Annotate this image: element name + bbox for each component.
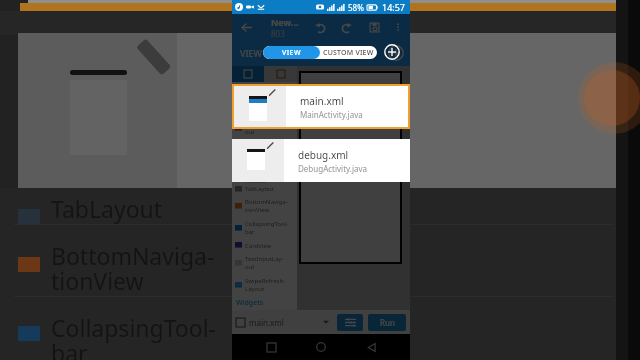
button[interactable]: CardView [232, 239, 297, 252]
staticText: RelativeLay- out [245, 120, 279, 136]
button[interactable]: CUSTOM VIEW [320, 46, 377, 59]
button[interactable]: Run [368, 314, 406, 331]
staticText: TabLayout [51, 193, 163, 224]
staticText: main.xml [249, 317, 284, 328]
staticText: CollapsingTool- bar [51, 312, 217, 360]
button[interactable]: Undo [312, 19, 328, 35]
button[interactable]: Save [366, 19, 382, 35]
button[interactable]: Recents [260, 336, 282, 358]
button[interactable]: FrameLayout [232, 139, 297, 152]
button[interactable]: Redo [338, 19, 354, 35]
staticText: CollapsingTool- bar [245, 220, 289, 236]
button[interactable]: Add view [384, 44, 400, 60]
button[interactable]: main.xml [234, 86, 408, 127]
button[interactable]: Add [388, 45, 404, 61]
staticText: VIEW [240, 47, 262, 59]
button[interactable]: AppBarLayout [232, 165, 297, 178]
button[interactable]: VIEW [263, 46, 320, 59]
staticText: TextInputLay- out [245, 255, 284, 271]
staticText: Widgets [236, 298, 264, 308]
button[interactable]: SwipeRefresh- Layout [232, 274, 297, 296]
button[interactable]: RelativeLay- out [232, 117, 297, 139]
staticText: MainActivity.java [300, 109, 363, 120]
button[interactable]: TextInputLay- out [232, 252, 297, 274]
staticText: ScrollView [245, 155, 274, 163]
staticText: 803 [271, 28, 285, 39]
staticText: LinearLayout [245, 107, 282, 115]
button[interactable]: Back [360, 336, 382, 358]
button[interactable]: Back [238, 19, 254, 35]
staticText: AppBarLayout [245, 168, 286, 176]
button[interactable]: CollapsingTool- bar [232, 217, 297, 239]
button[interactable]: Widgets tab [264, 66, 297, 82]
staticText: Run [380, 317, 395, 328]
button[interactable]: Toolbar [232, 178, 297, 183]
staticText: 58% [348, 2, 364, 13]
staticText: DebugActivity.java [298, 163, 368, 174]
staticText: Toolbar [245, 178, 267, 183]
staticText: VIEW [282, 48, 301, 58]
staticText: BottomNaviga- tionView [245, 198, 288, 214]
button[interactable]: Components tab [232, 66, 264, 82]
staticText: CardView [245, 242, 272, 250]
button[interactable]: ScrollView [232, 152, 297, 165]
button[interactable]: Settings [337, 314, 363, 331]
button[interactable]: More options [391, 20, 405, 34]
staticText: 14:57 [382, 1, 406, 13]
staticText: FrameLayout [245, 142, 282, 150]
staticText: BottomNaviga- tionView [51, 240, 215, 297]
button[interactable]: debug.xml [232, 139, 410, 182]
button[interactable]: ConstraintLay- out [232, 82, 297, 104]
staticText: SwipeRefresh- Layout [245, 277, 286, 293]
staticText: ConstraintLay- out [245, 85, 286, 101]
button[interactable]: BottomNaviga- tionView [232, 195, 297, 217]
staticText: CUSTOM VIEW [323, 48, 374, 58]
staticText: main.xml [300, 94, 344, 108]
staticText: TabLayout [245, 185, 274, 193]
button[interactable]: LinearLayout [232, 104, 297, 117]
button[interactable]: Home [310, 336, 332, 358]
staticText: New... [271, 16, 299, 28]
staticText: debug.xml [298, 148, 349, 162]
button[interactable]: TabLayout [232, 183, 297, 195]
